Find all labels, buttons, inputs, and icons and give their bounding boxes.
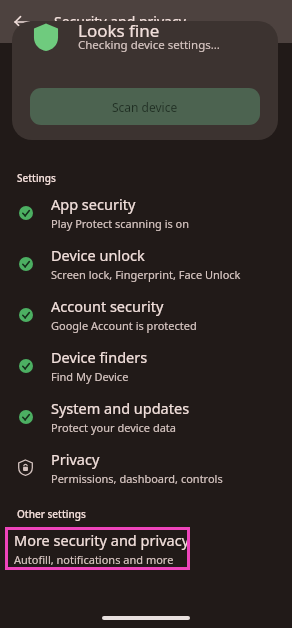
staticText: Play Protect scanning is on [51, 216, 190, 231]
staticText: Other settings [17, 507, 86, 521]
staticText: Find My Device [51, 369, 129, 384]
staticText: Device unlock [51, 245, 145, 265]
staticText: More security and privacy [14, 530, 190, 550]
staticText: Privacy [51, 449, 100, 469]
button[interactable]: Account security [0, 289, 292, 340]
staticText: Google Account is protected [51, 318, 197, 333]
staticText: Account security [51, 296, 164, 316]
button[interactable]: Back [6, 6, 38, 38]
staticText: Scan device [112, 99, 178, 115]
staticText: System and updates [51, 398, 190, 418]
button[interactable]: Scan device [30, 88, 260, 125]
button[interactable]: Device unlock [0, 238, 292, 289]
staticText: Settings [17, 171, 56, 185]
staticText: Protect your device data [51, 420, 176, 435]
button[interactable]: More security and privacy [5, 527, 190, 570]
button[interactable]: System and updates [0, 391, 292, 442]
staticText: Permissions, dashboard, controls [51, 471, 223, 486]
button[interactable]: Privacy [0, 442, 292, 493]
button[interactable]: App security [0, 187, 292, 238]
staticText: Looks fine [78, 21, 160, 42]
staticText: Screen lock, Fingerprint, Face Unlock [51, 267, 241, 282]
button[interactable]: Device finders [0, 340, 292, 391]
staticText: App security [51, 194, 136, 214]
staticText: Autofill, notifications and more [14, 552, 174, 567]
staticText: Device finders [51, 347, 148, 367]
button[interactable]: Looks fine [12, 21, 278, 140]
staticText: Checking device settings… [78, 37, 220, 53]
staticText: Security and privacy [54, 12, 186, 31]
